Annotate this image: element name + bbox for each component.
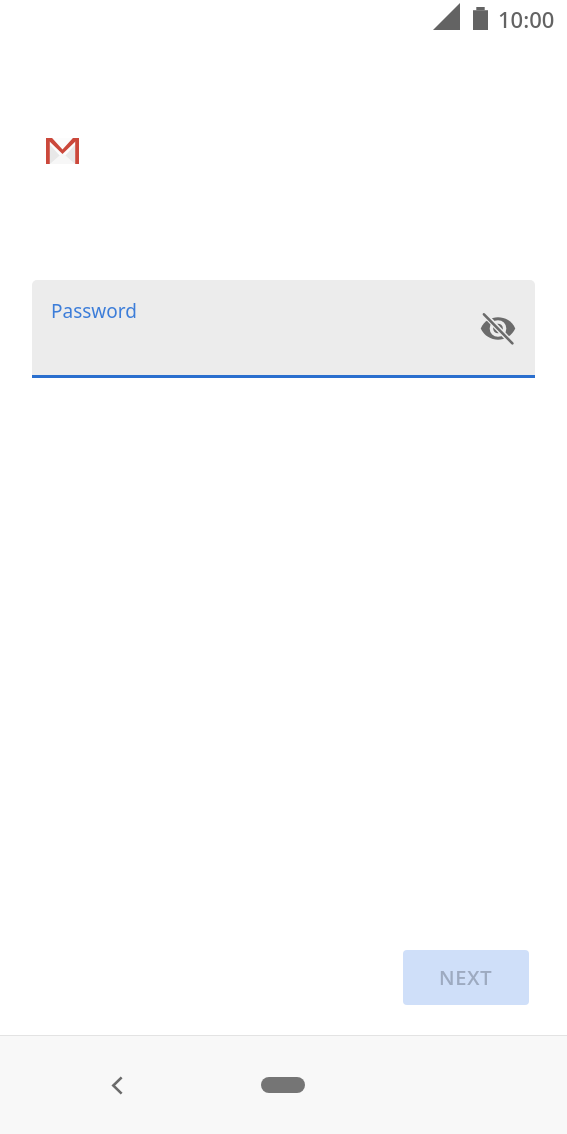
staticText: 10:00	[498, 4, 555, 34]
button[interactable]: Show password	[474, 305, 521, 352]
staticText: Password	[51, 298, 137, 324]
button[interactable]: Back	[93, 1062, 140, 1109]
staticText: NEXT	[439, 964, 493, 991]
button[interactable]: Home	[251, 1069, 315, 1101]
button[interactable]: Password	[32, 280, 535, 379]
button[interactable]: NEXT	[403, 950, 529, 1005]
